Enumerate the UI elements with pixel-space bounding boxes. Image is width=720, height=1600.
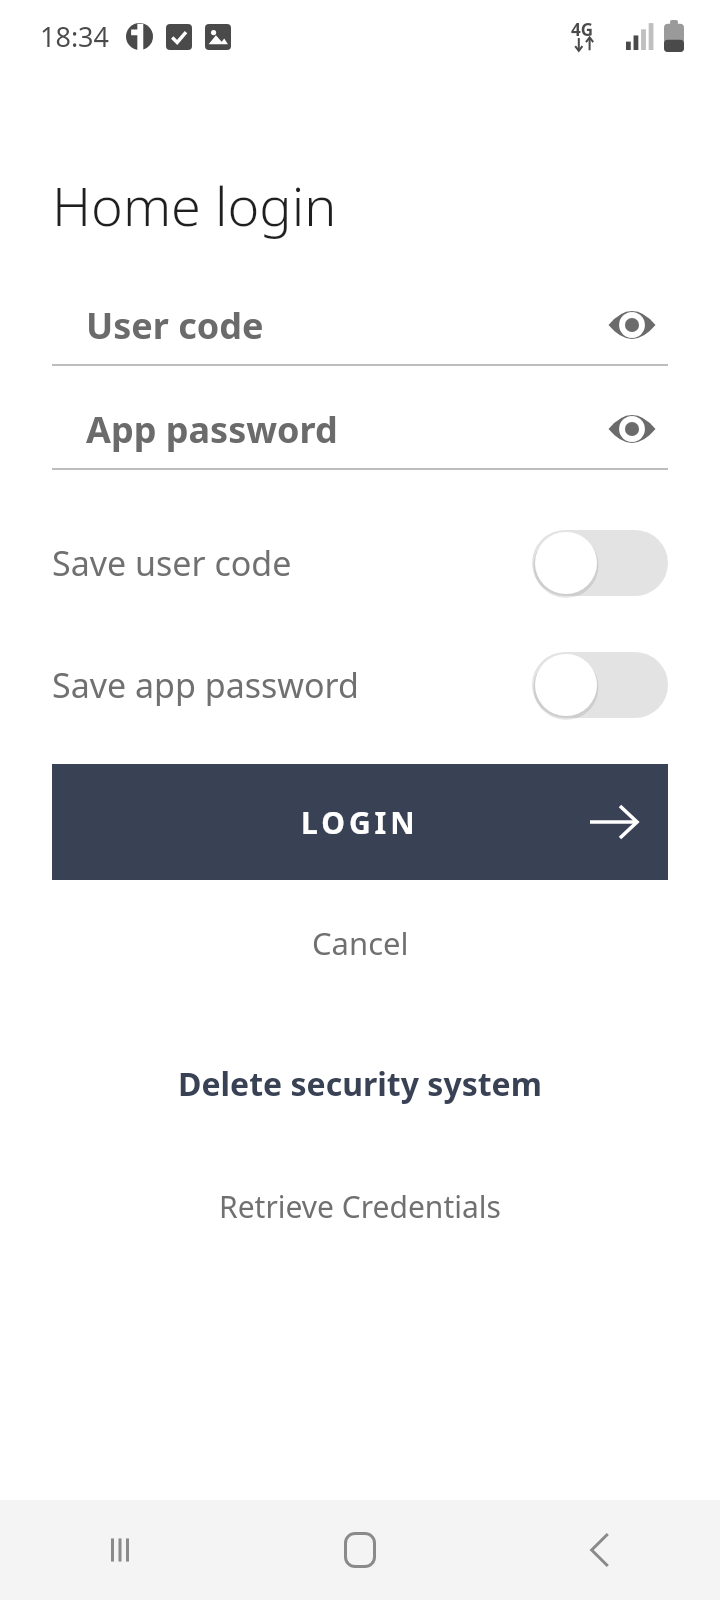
- button[interactable]: Save app password: [0, 642, 720, 728]
- staticText: App password: [86, 405, 596, 454]
- button[interactable]: Delete security system: [0, 1050, 720, 1118]
- staticText: 4G: [571, 18, 594, 41]
- button[interactable]: Save user code: [0, 520, 720, 606]
- button[interactable]: Back: [480, 1500, 720, 1600]
- button[interactable]: Show User code: [596, 289, 668, 361]
- button[interactable]: Cancel: [0, 908, 720, 978]
- button[interactable]: Home: [240, 1500, 480, 1600]
- button[interactable]: Show App password: [596, 393, 668, 465]
- staticText: 18:34: [40, 18, 110, 55]
- staticText: Save app password: [52, 662, 532, 708]
- staticText: Home login: [52, 168, 337, 242]
- staticText: Delete security system: [178, 1062, 542, 1106]
- button[interactable]: LOGIN: [52, 764, 668, 880]
- staticText: User code: [86, 301, 596, 350]
- staticText: Cancel: [312, 922, 409, 964]
- staticText: Retrieve Credentials: [219, 1186, 501, 1227]
- staticText: Save user code: [52, 540, 532, 586]
- button[interactable]: Retrieve Credentials: [0, 1174, 720, 1239]
- button[interactable]: Recent apps: [0, 1500, 240, 1600]
- staticText: LOGIN: [301, 802, 419, 843]
